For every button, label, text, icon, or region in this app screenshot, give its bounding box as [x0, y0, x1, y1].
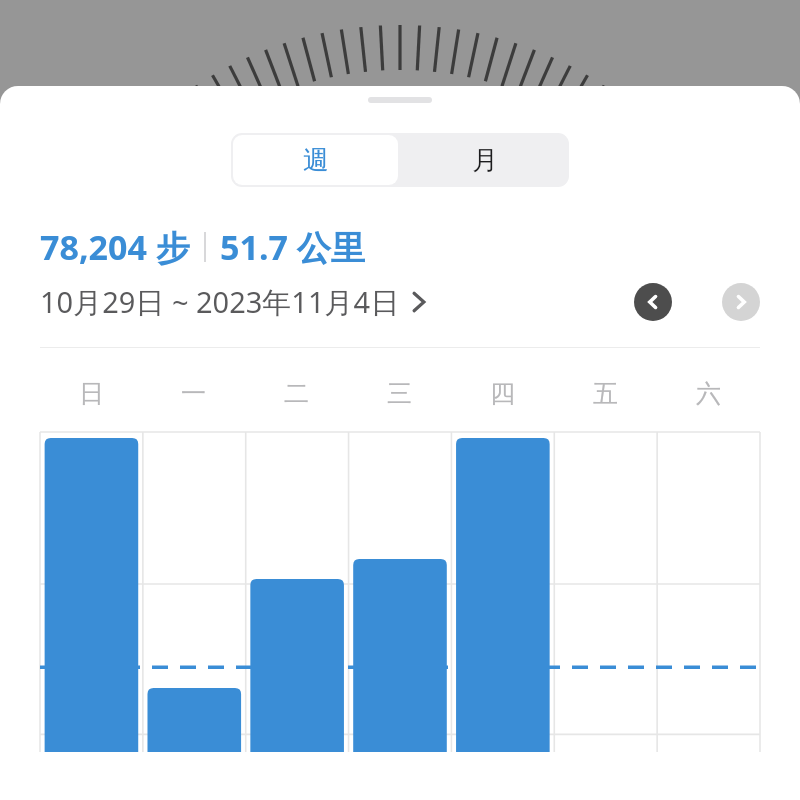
button[interactable]: 週 [233, 135, 398, 185]
button[interactable]: 10月29日 ~ 2023年11月4日 [40, 282, 426, 322]
staticText: 日 [79, 378, 104, 409]
staticText: 78,204 步 [40, 224, 190, 270]
staticText: 五 [593, 378, 618, 409]
staticText: 六 [696, 378, 721, 409]
staticText: 二 [284, 378, 309, 409]
button[interactable]: Previous week [634, 283, 672, 321]
staticText: 四 [490, 378, 515, 409]
staticText: 10月29日 ~ 2023年11月4日 [40, 282, 400, 322]
staticText: 週 [303, 144, 329, 177]
button[interactable]: 月 [400, 133, 569, 187]
staticText: 三 [387, 378, 412, 409]
button[interactable]: Next week [722, 283, 760, 321]
staticText: 51.7 公里 [220, 224, 365, 270]
staticText: 一 [181, 378, 206, 409]
staticText: 月 [472, 144, 498, 177]
